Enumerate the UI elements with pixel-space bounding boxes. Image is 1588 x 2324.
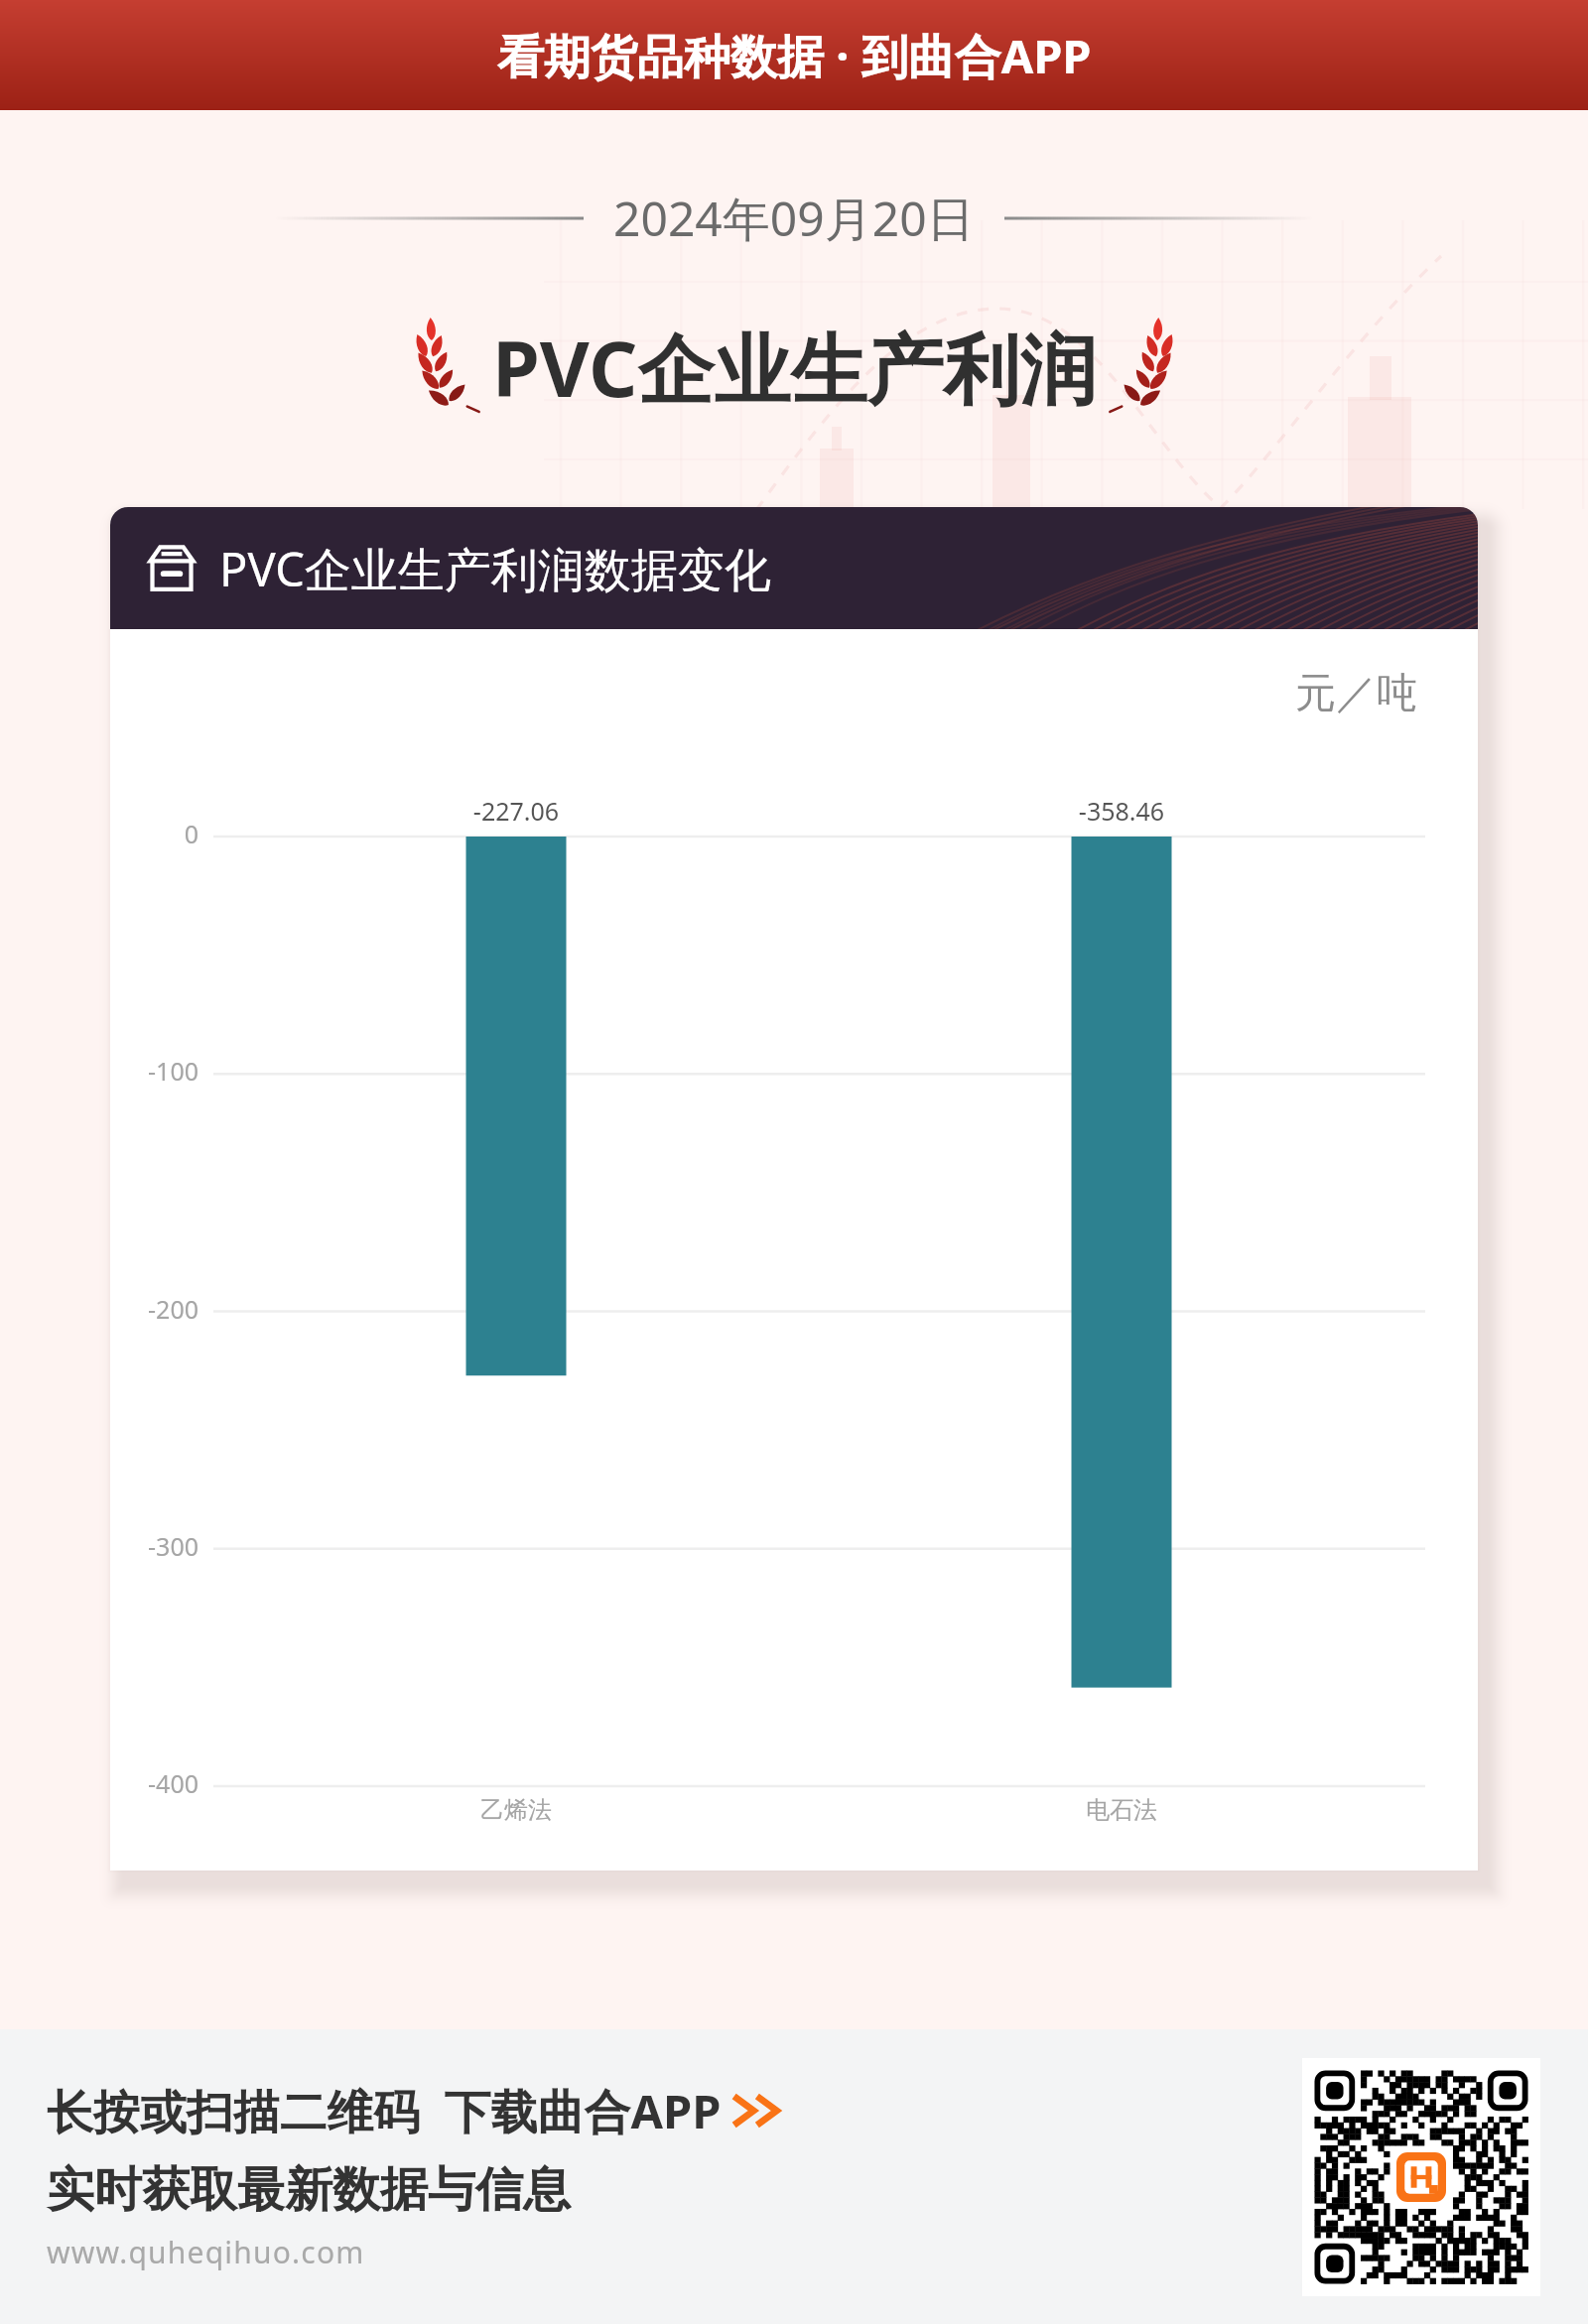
staticText: -300	[0, 1529, 198, 1563]
other: 前往下载	[729, 2091, 787, 2130]
button[interactable]: 数据卡片	[110, 507, 1478, 629]
staticText: 实时获取最新数据与信息	[47, 2160, 571, 2220]
button[interactable]: 看期货品种数据 · 到曲合APP	[0, 0, 1588, 110]
staticText: -358.46	[973, 794, 1270, 828]
staticText: 2024年09月20日	[613, 186, 975, 251]
button[interactable]: 扫描二维码下载曲合APP	[1302, 2058, 1540, 2296]
staticText: www.quheqihuo.com	[47, 2232, 365, 2272]
staticText: PVC企业生产利润数据变化	[219, 537, 771, 600]
staticText: 看期货品种数据 · 到曲合APP	[497, 24, 1092, 87]
other: 数据卡片	[146, 543, 198, 594]
staticText: 电石法	[973, 1795, 1270, 1825]
staticText: 0	[0, 817, 198, 850]
button[interactable]: 长按或扫描二维码 下载曲合APP	[47, 2079, 787, 2142]
staticText: 元／吨	[1295, 668, 1417, 719]
staticText: -400	[0, 1766, 198, 1800]
staticText: 乙烯法	[367, 1795, 665, 1825]
staticText: PVC企业生产利润	[492, 316, 1097, 420]
staticText: -200	[0, 1292, 198, 1326]
staticText: -227.06	[367, 794, 665, 828]
staticText: 长按或扫描二维码 下载曲合APP	[47, 2079, 722, 2142]
button[interactable]	[110, 507, 1478, 1871]
staticText: -100	[0, 1054, 198, 1088]
